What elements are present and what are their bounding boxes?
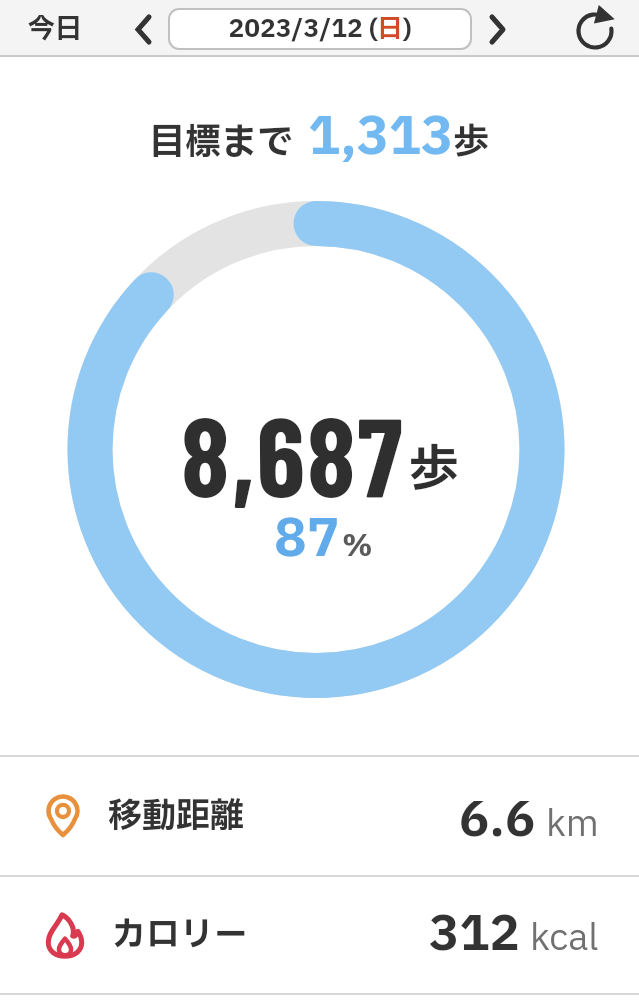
staticText: 移動距離 bbox=[108, 791, 244, 842]
staticText: % bbox=[342, 524, 373, 569]
button[interactable]: カロリー bbox=[0, 877, 639, 993]
button[interactable]: 2023/3/12 (日) bbox=[168, 8, 472, 50]
staticText: 2023/3/12 (日) bbox=[228, 11, 412, 48]
button[interactable]: 今日 bbox=[18, 1, 92, 57]
staticText: カロリー bbox=[112, 910, 248, 961]
staticText: 今日 bbox=[28, 9, 82, 49]
staticText: 6.6 bbox=[459, 785, 536, 857]
staticText: 87 bbox=[274, 501, 340, 579]
button[interactable]: 移動距離 bbox=[0, 757, 639, 875]
staticText: 1,313 bbox=[308, 100, 453, 176]
staticText: kcal bbox=[530, 912, 599, 966]
button[interactable] bbox=[570, 4, 620, 54]
staticText: km bbox=[546, 798, 599, 852]
button[interactable] bbox=[477, 9, 517, 49]
staticText: 312 bbox=[429, 899, 520, 971]
staticText: 8,687 bbox=[181, 387, 405, 519]
staticText: 目標まで bbox=[149, 116, 302, 170]
button[interactable] bbox=[123, 9, 163, 49]
staticText: 歩 bbox=[409, 433, 459, 508]
staticText: 歩 bbox=[453, 116, 490, 170]
